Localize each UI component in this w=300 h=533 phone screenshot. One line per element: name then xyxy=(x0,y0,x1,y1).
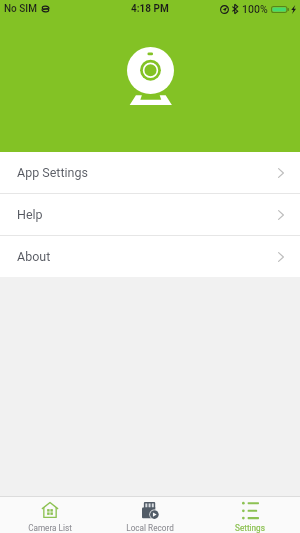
staticText: 4:18 PM xyxy=(131,3,169,15)
button[interactable]: Camera List xyxy=(0,497,100,533)
staticText: App Settings xyxy=(17,165,88,180)
button[interactable]: Settings xyxy=(200,497,300,533)
staticText: No SIM xyxy=(4,3,37,15)
staticText: 100% xyxy=(242,3,268,15)
staticText: Camera List xyxy=(28,523,72,533)
button[interactable]: Help xyxy=(0,194,300,235)
button[interactable]: Local Record xyxy=(100,497,200,533)
staticText: Help xyxy=(17,207,43,222)
staticText: Settings xyxy=(235,523,265,533)
button[interactable]: App Settings xyxy=(0,152,300,193)
staticText: About xyxy=(17,249,51,264)
staticText: Local Record xyxy=(126,523,174,533)
button[interactable]: About xyxy=(0,236,300,277)
